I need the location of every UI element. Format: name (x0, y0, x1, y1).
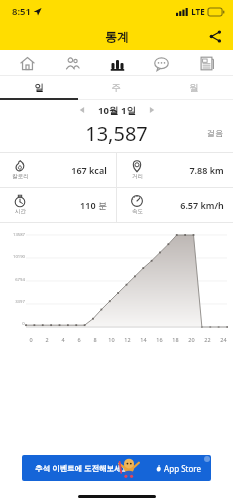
staticText: 속도 (132, 208, 143, 215)
staticText: 167 kcal (71, 164, 107, 176)
staticText: 24 (220, 336, 227, 343)
staticText: 통계 (105, 29, 129, 44)
button[interactable]: Share (203, 24, 227, 48)
staticText: 10190 (13, 254, 25, 260)
button[interactable]: Friends (54, 50, 90, 76)
button[interactable]: News (188, 50, 224, 76)
button[interactable]: 거리 (117, 153, 233, 187)
staticText: 6 (77, 336, 81, 343)
button[interactable]: 시간 (0, 188, 116, 222)
button[interactable]: 주 (77, 76, 155, 100)
button[interactable]: Next day (144, 102, 160, 118)
staticText: 10월 1일 (98, 104, 136, 117)
staticText: 10 (108, 336, 115, 343)
button[interactable]: 칼로리 (0, 153, 116, 187)
staticText: 12 (124, 336, 131, 343)
staticText: 2 (45, 336, 49, 343)
staticText: 시간 (15, 208, 26, 215)
button[interactable]: 일 (0, 76, 77, 100)
staticText: App Store (164, 463, 201, 474)
staticText: 8 (93, 336, 97, 343)
button[interactable]: 추석 이벤트에 도전해보세요 (22, 455, 211, 481)
button[interactable]: Chat (143, 50, 179, 76)
staticText: 0 (22, 321, 25, 327)
staticText: 3397 (15, 299, 25, 305)
button[interactable]: Home (9, 50, 45, 76)
staticText: 20 (188, 336, 195, 343)
staticText: 8:51 (12, 5, 31, 18)
staticText: 추석 이벤트에 도전해보세요 (35, 463, 129, 473)
staticText: 110 분 (80, 199, 107, 211)
staticText: 6794 (15, 277, 25, 283)
staticText: 14 (140, 336, 147, 343)
staticText: 22 (204, 336, 211, 343)
staticText: 4 (61, 336, 65, 343)
staticText: 칼로리 (12, 173, 29, 180)
staticText: 월 (189, 82, 199, 94)
button[interactable]: Close ad (204, 456, 210, 462)
staticText: 주 (111, 82, 121, 94)
staticText: 거리 (132, 173, 143, 180)
button[interactable]: Previous day (74, 102, 90, 118)
staticText: 6.57 km/h (180, 199, 224, 211)
button[interactable]: 월 (155, 76, 233, 100)
button[interactable]: Statistics (99, 50, 135, 76)
button[interactable]: 속도 (117, 188, 233, 222)
staticText: 0 (29, 336, 33, 343)
staticText: 13,587 (85, 120, 148, 146)
staticText: 16 (156, 336, 163, 343)
staticText: 13587 (13, 232, 25, 238)
staticText: LTE (191, 6, 205, 17)
staticText: 7.88 km (189, 164, 224, 176)
staticText: 걸음 (207, 128, 223, 138)
staticText: 일 (34, 82, 44, 94)
staticText: 18 (172, 336, 179, 343)
